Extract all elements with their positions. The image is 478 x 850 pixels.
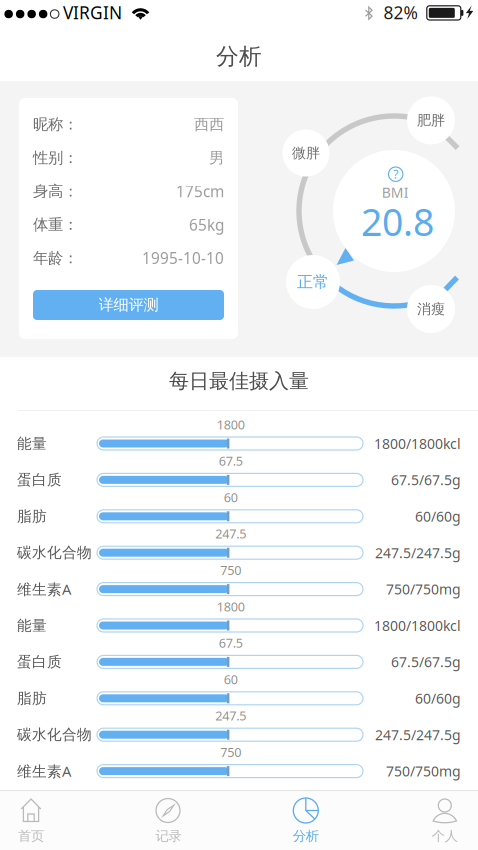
staticText: 首页 <box>18 828 44 844</box>
staticText: VIRGIN <box>63 1 122 24</box>
staticText: 60 <box>224 671 238 688</box>
staticText: 消瘦 <box>417 300 445 318</box>
staticText: 65kg <box>189 214 224 235</box>
staticText: 1800 <box>217 416 245 433</box>
staticText: 分析 <box>293 828 319 844</box>
staticText: 个人 <box>432 828 458 844</box>
staticText: 每日最佳摄入量 <box>169 368 309 394</box>
staticText: 247.5 <box>215 525 246 542</box>
staticText: 67.5 <box>219 452 243 470</box>
staticText: 维生素A <box>17 761 71 781</box>
staticText: 男 <box>209 148 224 167</box>
staticText: 年龄： <box>33 248 78 268</box>
staticText: 1800/1800kcl <box>374 616 461 635</box>
staticText: 脂肪 <box>17 689 47 708</box>
button[interactable]: 记录 <box>118 794 218 846</box>
staticText: 能量 <box>17 434 47 453</box>
staticText: 247.5/247.5g <box>375 543 461 562</box>
staticText: 750/750mg <box>386 762 461 781</box>
button[interactable]: 个人 <box>395 794 478 846</box>
staticText: 1800/1800kcl <box>374 434 461 453</box>
staticText: 247.5 <box>215 707 246 724</box>
staticText: 肥胖 <box>417 112 445 129</box>
staticText: 性别： <box>33 148 78 167</box>
staticText: 20.8 <box>361 196 434 247</box>
staticText: 昵称： <box>33 115 78 134</box>
staticText: 能量 <box>17 616 47 635</box>
staticText: 750 <box>220 743 241 761</box>
staticText: 247.5/247.5g <box>375 725 461 744</box>
staticText: 60/60g <box>415 507 461 526</box>
staticText: 记录 <box>155 828 181 844</box>
staticText: 1800 <box>217 598 245 615</box>
staticText: 西西 <box>194 115 224 134</box>
staticText: 1995-10-10 <box>142 248 224 269</box>
staticText: 维生素A <box>17 579 71 599</box>
staticText: 碳水化合物 <box>17 543 92 562</box>
staticText: 蛋白质 <box>17 653 62 671</box>
button[interactable]: 分析 <box>256 794 356 846</box>
staticText: 175cm <box>176 181 224 202</box>
staticText: 正常 <box>297 272 329 292</box>
staticText: 蛋白质 <box>17 471 62 489</box>
staticText: 750/750mg <box>386 580 461 599</box>
staticText: 82% <box>383 1 417 24</box>
staticText: 60 <box>224 489 238 506</box>
staticText: 67.5 <box>219 634 243 652</box>
staticText: 脂肪 <box>17 507 47 526</box>
staticText: 750 <box>220 561 241 579</box>
staticText: 67.5/67.5g <box>391 652 461 671</box>
button[interactable]: 首页 <box>0 794 81 846</box>
staticText: BMI <box>382 183 409 202</box>
staticText: 微胖 <box>292 144 320 162</box>
staticText: 碳水化合物 <box>17 725 92 744</box>
button[interactable]: 详细评测 <box>33 290 224 320</box>
staticText: 详细评测 <box>98 295 158 315</box>
staticText: 身高： <box>33 182 78 201</box>
staticText: 体重： <box>33 215 78 234</box>
staticText: 67.5/67.5g <box>391 470 461 489</box>
staticText: 60/60g <box>415 689 461 708</box>
staticText: 分析 <box>216 42 262 71</box>
staticText: ? <box>393 166 398 182</box>
